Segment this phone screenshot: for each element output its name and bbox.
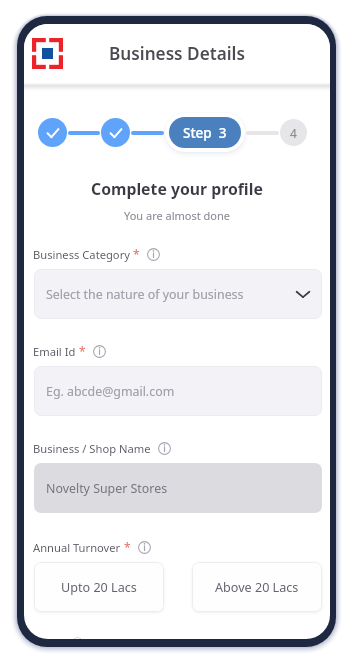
staticText: Complete your profile (91, 178, 263, 200)
button[interactable]: Step 3 (169, 117, 241, 148)
other: Bank logo (32, 38, 63, 69)
button[interactable]: 4 (280, 119, 307, 146)
button[interactable]: Completed step (101, 118, 130, 147)
staticText: Eg. abcde@gmail.com (46, 383, 175, 400)
staticText: Select the nature of your business (46, 286, 244, 303)
staticText: Email Id (33, 344, 76, 359)
staticText: Business Details (109, 42, 245, 65)
staticText: 4 (290, 125, 297, 141)
button[interactable]: Novelty Super Stores (34, 463, 322, 513)
staticText: Business / Shop Name (33, 441, 151, 456)
staticText: Novelty Super Stores (46, 480, 168, 497)
staticText: * (130, 246, 140, 262)
staticText: Step 3 (183, 124, 227, 142)
button[interactable]: Above 20 Lacs (192, 562, 322, 612)
button[interactable]: Select the nature of your business (34, 269, 322, 319)
button[interactable]: Eg. abcde@gmail.com (34, 366, 322, 416)
button[interactable]: Upto 20 Lacs (34, 562, 164, 612)
button[interactable]: Completed step (38, 118, 67, 147)
staticText: You are almost done (124, 208, 231, 223)
staticText: * (121, 539, 131, 555)
staticText: * (76, 343, 86, 359)
staticText: Annual Turnover (33, 540, 121, 555)
staticText: Business Category (33, 247, 130, 262)
staticText: Above 20 Lacs (215, 579, 299, 596)
staticText: Upto 20 Lacs (61, 579, 137, 596)
